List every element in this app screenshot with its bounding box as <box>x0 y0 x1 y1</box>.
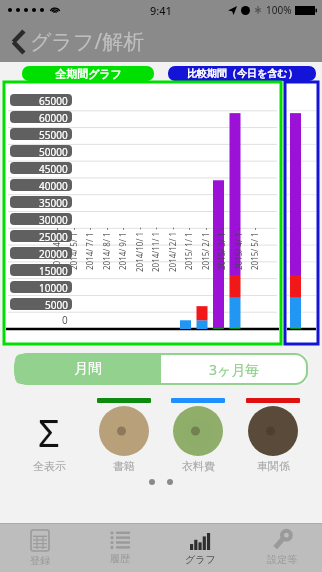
button[interactable]: 登録 <box>0 524 80 572</box>
staticText: 2015/ 2/ 1 - <box>200 227 211 270</box>
button[interactable]: 月間 <box>15 354 161 384</box>
staticText: 35000 <box>39 196 68 208</box>
button[interactable]: 車関係 <box>240 398 306 473</box>
button[interactable]: グラフ <box>160 524 241 572</box>
staticText: 3ヶ月毎 <box>209 360 260 379</box>
staticText: 2014/ 7/ 1 - <box>84 227 95 270</box>
staticText: 30000 <box>39 213 68 225</box>
staticText: 全表示 <box>33 459 66 473</box>
staticText: 2014/ 5/ 1 - <box>68 227 79 270</box>
staticText: 衣料費 <box>182 459 215 473</box>
staticText: 比較期間（今日を含む） <box>187 67 298 80</box>
button[interactable]: 履歴 <box>80 524 160 572</box>
button[interactable]: 全期間グラフ <box>22 66 154 81</box>
staticText: 2015/ 1/ 1 - <box>183 227 194 270</box>
staticText: 2014/12/ 1 - <box>167 227 178 272</box>
staticText: 0 <box>62 313 68 325</box>
staticText: 2014/ 9/ 1 - <box>117 227 128 270</box>
staticText: 月間 <box>74 360 102 378</box>
staticText: Σ <box>38 406 60 456</box>
staticText: グラフ <box>185 553 216 566</box>
button[interactable]: 設定等 <box>241 524 322 572</box>
staticText: 9:41 <box>150 3 172 18</box>
staticText: 2015/ 5/ 1 - <box>249 227 260 270</box>
staticText: 40000 <box>39 179 68 191</box>
staticText: 設定等 <box>267 553 297 566</box>
button[interactable]: 3ヶ月毎 <box>161 354 307 384</box>
staticText: 50000 <box>39 145 68 157</box>
staticText: 25000 <box>39 230 68 242</box>
staticText: グラフ/解析 <box>30 27 145 56</box>
staticText: 2015/ 4/ 1 - <box>233 227 244 270</box>
staticText: 2014/ 8/ 1 - <box>101 227 112 270</box>
button[interactable]: 書籍 <box>91 398 157 473</box>
staticText: 履歴 <box>110 552 130 565</box>
staticText: 2014/ 4/ 1 - <box>51 227 62 270</box>
staticText: 20000 <box>39 247 68 259</box>
staticText: 45000 <box>39 162 68 174</box>
staticText: 登録 <box>30 554 50 567</box>
staticText: 5000 <box>45 298 68 310</box>
staticText: 全期間グラフ <box>55 67 122 81</box>
staticText: 書籍 <box>113 459 135 473</box>
button[interactable]: Σ <box>16 398 82 473</box>
staticText: 100% <box>266 3 292 17</box>
staticText: 2014/11/ 1 - <box>150 227 161 272</box>
staticText: 65000 <box>39 94 68 106</box>
staticText: 15000 <box>39 264 68 276</box>
button[interactable]: 比較期間（今日を含む） <box>168 66 316 81</box>
staticText: 車関係 <box>257 459 290 473</box>
button[interactable]: 衣料費 <box>165 398 231 473</box>
staticText: 2014/10/ 1 - <box>134 227 145 272</box>
staticText: 55000 <box>39 128 68 140</box>
staticText: 60000 <box>39 111 68 123</box>
button[interactable]: Back <box>8 23 149 60</box>
staticText: 2015/ 3/ 1 - <box>216 227 227 270</box>
staticText: 10000 <box>39 281 68 293</box>
